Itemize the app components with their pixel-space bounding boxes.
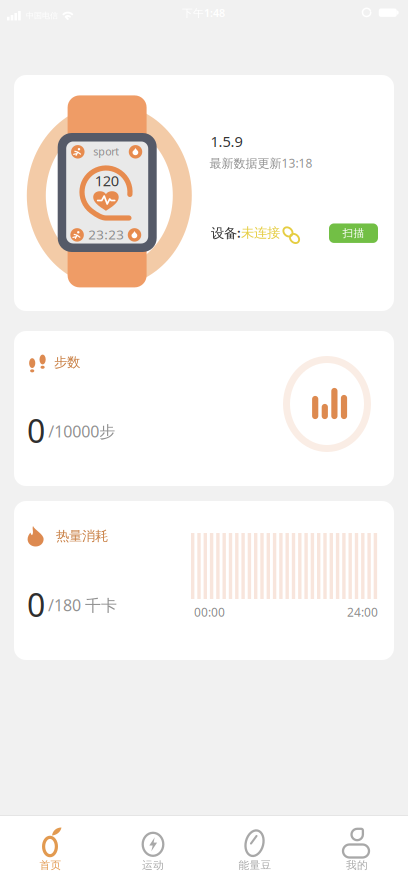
staticText: 00:00 xyxy=(194,604,225,620)
button[interactable]: 扫描 xyxy=(329,223,378,243)
button[interactable]: 首页 xyxy=(0,815,102,883)
button[interactable]: 我的 xyxy=(306,815,408,883)
staticText: sport xyxy=(93,144,119,158)
staticText: 下午1:48 xyxy=(182,6,225,20)
staticText: 23:23 xyxy=(88,225,124,243)
staticText: 0 xyxy=(27,409,45,452)
button[interactable]: 运动 xyxy=(102,815,204,883)
staticText: 扫描 xyxy=(342,227,364,240)
staticText: 我的 xyxy=(346,859,368,872)
staticText: 未连接 xyxy=(241,224,280,241)
staticText: 热量消耗 xyxy=(56,528,108,544)
staticText: 首页 xyxy=(40,859,62,872)
staticText: 1.5.9 xyxy=(210,131,242,151)
staticText: 能量豆 xyxy=(238,859,271,872)
staticText: 最新数据更新13:18 xyxy=(210,155,313,171)
staticText: 0 xyxy=(27,583,45,626)
staticText: 运动 xyxy=(142,859,164,872)
staticText: 24:00 xyxy=(347,604,378,620)
staticText: 中国电信 xyxy=(26,11,58,21)
staticText: /180 千卡 xyxy=(48,594,117,616)
button[interactable]: 能量豆 xyxy=(204,815,306,883)
staticText: 步数 xyxy=(54,354,80,370)
staticText: /10000步 xyxy=(48,421,115,442)
staticText: 设备: xyxy=(211,224,241,241)
staticText: 120 xyxy=(95,171,119,190)
